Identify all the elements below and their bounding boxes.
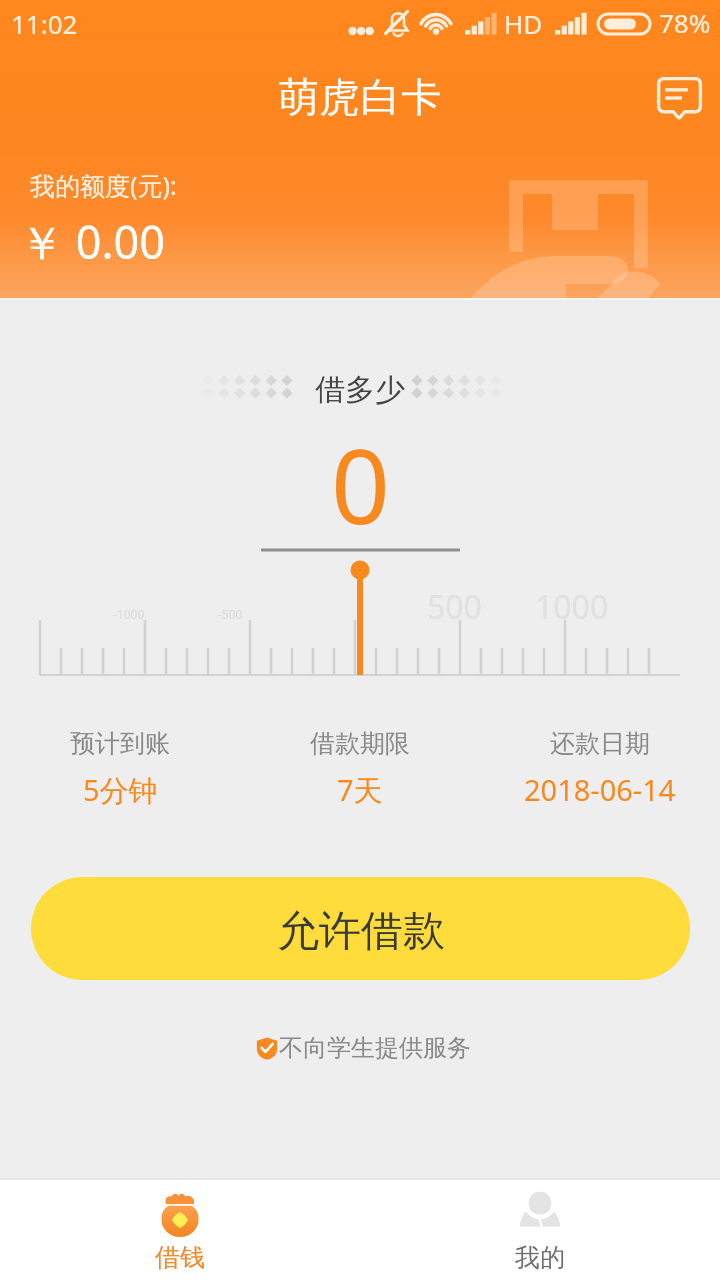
button[interactable]: 还款日期 [480, 728, 720, 809]
staticText: 预计到账 [70, 728, 170, 759]
staticText: -1000 [113, 606, 145, 622]
staticText: 萌虎白卡 [278, 72, 442, 122]
staticText: 允许借款 [277, 905, 445, 958]
staticText: 还款日期 [550, 728, 650, 759]
staticText: 不向学生提供服务 [279, 1033, 471, 1063]
button[interactable]: 借款期限 [240, 728, 480, 810]
staticText: 11:02 [11, 6, 78, 41]
staticText: ￥ 0.00 [19, 211, 165, 272]
staticText: 5分钟 [83, 770, 158, 810]
staticText: 7天 [337, 770, 383, 810]
staticText: 0 [331, 414, 390, 554]
staticText: 78% [659, 5, 711, 40]
staticText: 2018-06-14 [524, 770, 676, 809]
staticText: -500 [218, 606, 243, 622]
staticText: 借款期限 [310, 728, 410, 759]
button[interactable]: 不向学生提供服务 [255, 1033, 471, 1063]
staticText: 我的 [515, 1242, 565, 1273]
button[interactable]: 我的 [360, 1179, 720, 1273]
staticText: HD [504, 6, 543, 41]
staticText: 借多少 [315, 371, 405, 409]
button[interactable]: Messages [652, 72, 708, 128]
staticText: 借钱 [155, 1242, 205, 1273]
button[interactable]: 允许借款 [31, 877, 690, 980]
staticText: 500 [427, 585, 482, 629]
staticText: 1000 [535, 585, 609, 629]
button[interactable]: 预计到账 [0, 728, 240, 810]
button[interactable]: 借钱 [0, 1179, 360, 1273]
staticText: 我的额度(元): [30, 168, 177, 202]
